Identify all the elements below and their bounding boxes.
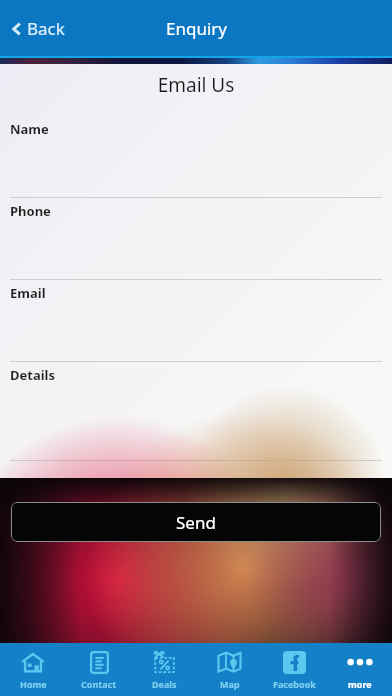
button[interactable]: Map — [197, 643, 262, 696]
button[interactable]: Phone — [0, 198, 392, 280]
staticText: Facebook — [273, 678, 316, 690]
button[interactable]: Send — [11, 502, 381, 542]
button[interactable]: Contact — [66, 643, 132, 696]
staticText: Back — [27, 17, 65, 40]
staticText: Details — [10, 366, 55, 384]
staticText: Home — [20, 678, 47, 690]
button[interactable]: Details — [0, 362, 392, 461]
staticText: Deals — [152, 678, 177, 690]
staticText: Phone — [10, 202, 51, 220]
staticText: Send — [176, 511, 216, 534]
button[interactable]: Name — [0, 116, 392, 198]
button[interactable]: Email — [0, 280, 392, 362]
staticText: Contact — [81, 678, 117, 690]
button[interactable]: Home — [0, 643, 66, 696]
staticText: Name — [10, 120, 49, 138]
staticText: Map — [220, 678, 240, 690]
button[interactable]: Deals — [132, 643, 197, 696]
staticText: Enquiry — [166, 17, 227, 40]
staticText: Email Us — [0, 72, 392, 98]
button[interactable]: more — [327, 643, 392, 696]
button[interactable]: Facebook — [262, 643, 327, 696]
button[interactable]: Back — [8, 11, 69, 46]
staticText: more — [348, 678, 372, 690]
staticText: Email — [10, 284, 46, 302]
